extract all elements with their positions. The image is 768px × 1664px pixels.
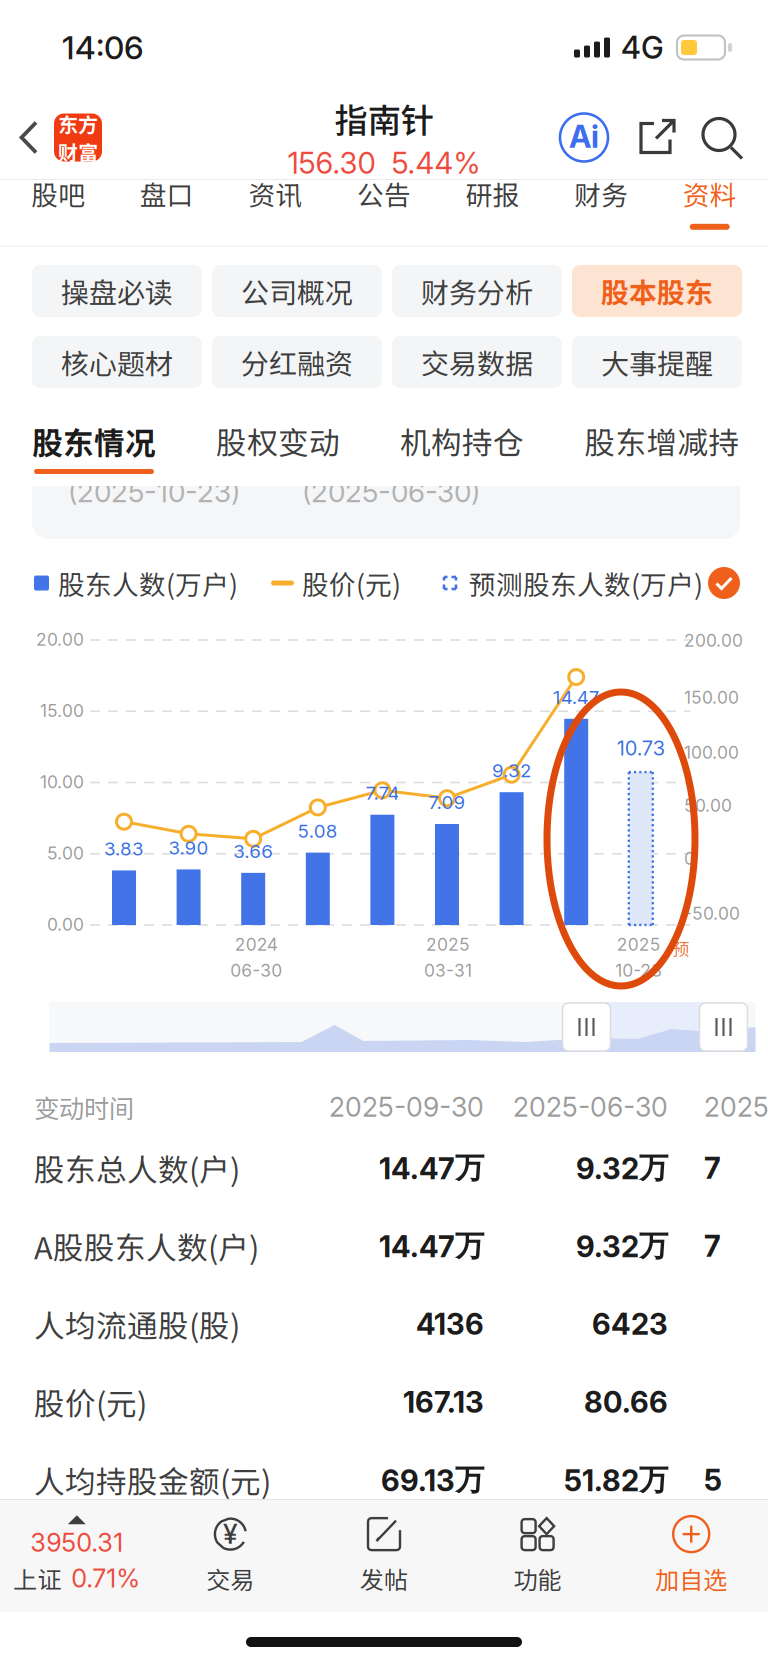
staticText: 06-30 [230, 960, 282, 981]
staticText: 2025 [426, 934, 470, 955]
staticText: 预 [672, 936, 689, 961]
staticText: Ai [569, 118, 599, 155]
staticText: 预测股东人数(万户) [469, 564, 703, 602]
staticText: 研报 [466, 174, 520, 213]
staticText: ¥ [223, 1518, 238, 1550]
staticText: 人均流通股(股) [34, 1302, 240, 1346]
staticText: 股东增减持 [584, 419, 739, 463]
staticText: 指南针 [334, 94, 433, 142]
button[interactable]: 公司概况 [212, 265, 382, 317]
staticText: 9.32 [492, 759, 531, 782]
staticText: 股价(元) [302, 564, 401, 602]
button[interactable]: 已选全部 [708, 567, 740, 599]
staticText: 10.00 [40, 771, 84, 792]
staticText: 核心题材 [61, 342, 173, 382]
staticText: 7 [704, 1150, 721, 1186]
staticText: 4136 [416, 1306, 484, 1342]
staticText: 03-31 [424, 960, 472, 981]
staticText: 财务分析 [421, 271, 533, 311]
staticText: 6423 [592, 1306, 668, 1342]
button[interactable]: 股东增减持 [586, 420, 738, 474]
staticText: 0.00 [47, 914, 84, 935]
button[interactable]: 东方财富 [54, 113, 102, 161]
staticText: 7.09 [428, 791, 465, 814]
button[interactable]: 研报 [438, 180, 547, 246]
button[interactable]: 公告 [330, 180, 438, 246]
button[interactable]: 交易数据 [392, 336, 562, 388]
button[interactable]: 核心题材 [32, 336, 202, 388]
staticText: -50.00 [684, 903, 740, 924]
staticText: 10.73 [617, 736, 665, 760]
staticText: 3.90 [169, 836, 209, 859]
staticText: 机构持仓 [400, 419, 524, 463]
staticText: 4G [621, 29, 664, 66]
button[interactable]: ¥ [154, 1515, 307, 1596]
staticText: (2025-06-30) [302, 475, 480, 509]
staticText: 交易 [206, 1561, 254, 1596]
staticText: 150.00 [684, 687, 739, 708]
staticText: 200.00 [684, 630, 743, 651]
staticText: 5.08 [298, 820, 338, 842]
staticText: 10-23 [615, 960, 662, 981]
button[interactable]: 发帖 [307, 1515, 461, 1596]
staticText: 财富 [58, 137, 98, 166]
button[interactable]: 财务 [547, 180, 655, 246]
staticText: 3.66 [233, 840, 273, 862]
staticText: 14.47万 [379, 1149, 484, 1186]
button[interactable]: 机构持仓 [402, 420, 522, 474]
staticText: 资讯 [248, 174, 302, 213]
staticText: 14:06 [62, 28, 144, 67]
button[interactable]: 分红融资 [212, 336, 382, 388]
staticText: 股东总人数(户) [34, 1146, 240, 1190]
button[interactable]: 加自选 [614, 1515, 768, 1596]
button[interactable]: 盘口 [113, 180, 221, 246]
staticText: 加自选 [655, 1561, 727, 1596]
staticText: 股东人数(万户) [58, 564, 238, 602]
staticText: 51.82万 [564, 1461, 668, 1498]
staticText: 大事提醒 [601, 342, 713, 382]
button[interactable]: 起始时间 [562, 1003, 610, 1051]
button[interactable]: 股本股东 [572, 265, 742, 317]
button[interactable]: 操盘必读 [32, 265, 202, 317]
button[interactable]: 返回 [0, 105, 54, 169]
staticText: 50.00 [684, 795, 732, 816]
button[interactable]: 结束时间 [699, 1003, 747, 1051]
button[interactable]: 分享 [608, 116, 680, 158]
staticText: 14.47万 [379, 1227, 484, 1264]
staticText: 操盘必读 [61, 271, 173, 311]
button[interactable]: 搜索 [680, 116, 744, 158]
staticText: 2024 [235, 934, 278, 955]
staticText: 股吧 [31, 174, 85, 213]
button[interactable]: 股东情况 [34, 420, 154, 474]
button[interactable]: 股权变动 [218, 420, 338, 474]
button[interactable]: 大事提醒 [572, 336, 742, 388]
button[interactable]: 资讯 [221, 180, 330, 246]
staticText: 交易数据 [421, 342, 533, 382]
staticText: 156.30 5.44% [287, 145, 480, 181]
button[interactable]: 功能 [461, 1515, 614, 1596]
staticText: 9.32万 [576, 1227, 668, 1264]
button[interactable]: 股吧 [4, 180, 113, 246]
staticText: 0.71% [71, 1563, 140, 1594]
staticText: 股本股东 [601, 271, 713, 311]
staticText: 2025 [704, 1091, 768, 1123]
staticText: 7.74 [365, 782, 399, 804]
staticText: 2025-09-30 [329, 1091, 484, 1123]
staticText: 股价(元) [34, 1380, 147, 1424]
staticText: 上证 [13, 1561, 61, 1596]
staticText: 资料 [683, 174, 737, 213]
staticText: 69.13万 [381, 1461, 484, 1498]
button[interactable]: AI 助手 [560, 113, 608, 161]
staticText: 15.00 [40, 700, 84, 721]
staticText: 167.13 [403, 1384, 484, 1420]
staticText: A股股东人数(户) [34, 1224, 259, 1268]
staticText: 发帖 [360, 1561, 408, 1596]
button[interactable]: 3950.31 [0, 1515, 154, 1596]
button[interactable]: 资料 [655, 180, 764, 246]
staticText: 股东情况 [32, 419, 156, 463]
button[interactable]: 财务分析 [392, 265, 562, 317]
staticText: 股权变动 [216, 419, 340, 463]
staticText: 14.47 [553, 686, 600, 708]
staticText: 3.83 [104, 837, 144, 860]
staticText: 5 [704, 1462, 722, 1498]
